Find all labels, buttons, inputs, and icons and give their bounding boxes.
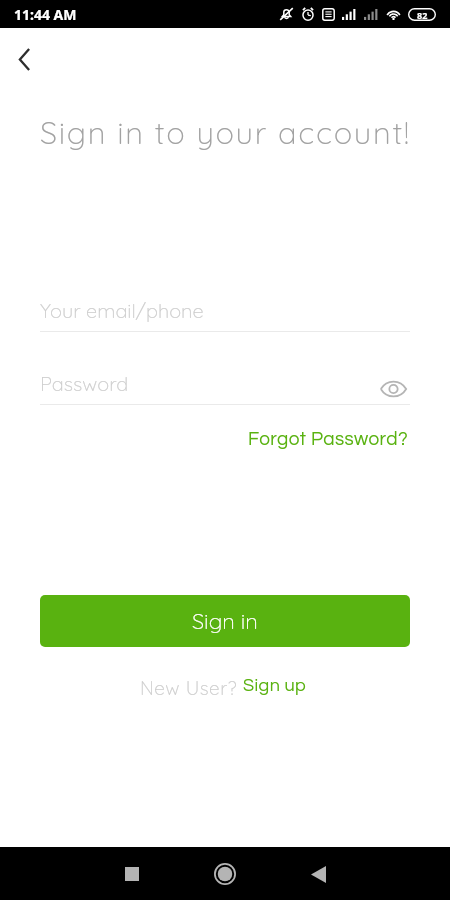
button[interactable]: Show password [377, 373, 409, 404]
staticText: Your email/phone [40, 298, 204, 323]
staticText: 11:44 AM [14, 5, 77, 24]
button[interactable]: Sign up [243, 676, 307, 695]
staticText: Sign in [192, 607, 258, 635]
button[interactable]: Home [201, 850, 249, 898]
staticText: 82 [417, 9, 428, 21]
button[interactable]: Back [294, 850, 342, 898]
staticText: New User? [140, 676, 243, 700]
staticText: Password [40, 371, 129, 396]
staticText: Sign in to your account! [40, 113, 411, 152]
button[interactable]: Sign in [40, 595, 410, 647]
button[interactable]: Forgot Password? [248, 429, 409, 449]
button[interactable]: Back [6, 41, 42, 77]
button[interactable]: Recents [108, 850, 156, 898]
